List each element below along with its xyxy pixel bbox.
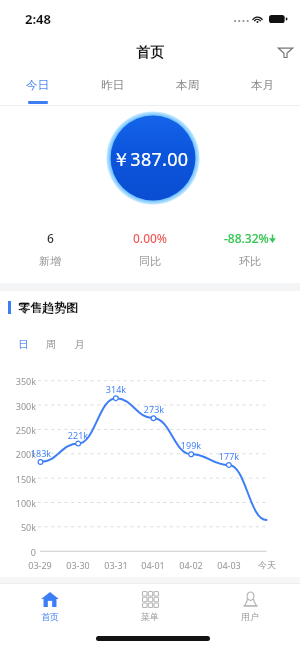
button[interactable]: 用户 (200, 584, 300, 624)
staticText: 昨日 (101, 78, 124, 92)
staticText: 0 (0, 546, 36, 558)
staticText: 6 (47, 230, 54, 246)
staticText: 用户 (241, 611, 259, 622)
button[interactable]: Filter (273, 40, 297, 64)
button[interactable]: 本月 (225, 68, 300, 104)
button[interactable]: 菜单 (100, 584, 200, 624)
staticText: 环比 (239, 254, 261, 268)
staticText: 零售趋势图 (18, 300, 78, 315)
staticText: 日 (18, 338, 29, 351)
button[interactable]: 日 (9, 332, 37, 356)
staticText: 03-30 (58, 559, 98, 571)
staticText: 菜单 (141, 611, 159, 622)
button[interactable]: 本周 (150, 68, 225, 104)
staticText: 150k (0, 473, 36, 485)
staticText: 250k (0, 424, 36, 436)
staticText: 350k (0, 375, 36, 387)
staticText: 今天 (247, 559, 287, 570)
staticText: 200k (0, 448, 36, 460)
button[interactable]: 6 (0, 222, 100, 274)
staticText: 今日 (26, 78, 49, 92)
staticText: 04-01 (133, 559, 173, 571)
staticText: 2:48 (25, 10, 51, 28)
button[interactable]: -88.32% (200, 222, 300, 274)
staticText: 314k (98, 383, 134, 395)
staticText: 同比 (139, 254, 161, 268)
staticText: 周 (46, 338, 57, 351)
staticText: 300k (0, 400, 36, 412)
staticText: 273k (136, 403, 172, 415)
staticText: 177k (211, 450, 247, 462)
staticText: 183k (23, 447, 59, 459)
staticText: 04-02 (171, 559, 211, 571)
staticText: 03-31 (96, 559, 136, 571)
staticText: 221k (60, 429, 96, 441)
staticText: 04-03 (209, 559, 249, 571)
staticText: 本周 (176, 78, 199, 92)
staticText: ￥387.00 (112, 147, 189, 172)
staticText: 199k (173, 439, 209, 451)
button[interactable]: 周 (37, 332, 65, 356)
staticText: 03-29 (20, 559, 60, 571)
staticText: 100k (0, 497, 36, 509)
button[interactable]: 昨日 (75, 68, 150, 104)
staticText: 50k (0, 521, 36, 533)
staticText: 首页 (136, 44, 164, 62)
staticText: 新增 (39, 254, 61, 268)
staticText: 首页 (41, 611, 59, 622)
staticText: 0.00% (133, 230, 168, 246)
staticText: 本月 (251, 78, 274, 92)
button[interactable]: 0.00% (100, 222, 200, 274)
button[interactable]: 月 (65, 332, 93, 356)
button[interactable]: 首页 (0, 584, 100, 624)
button[interactable]: 今日 (0, 68, 75, 104)
staticText: 月 (74, 338, 85, 351)
staticText: -88.32% (224, 230, 269, 246)
